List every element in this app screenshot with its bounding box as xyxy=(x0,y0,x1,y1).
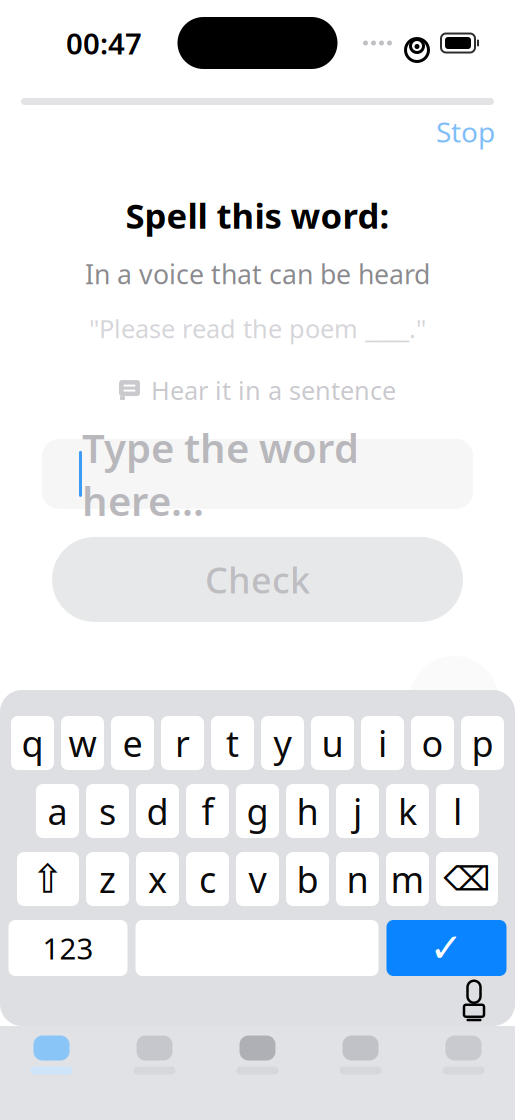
staticText: "Please read the poem ____." xyxy=(89,312,426,345)
staticText: ✓ xyxy=(429,925,463,971)
button[interactable]: 123 xyxy=(8,920,127,976)
staticText: j xyxy=(353,787,362,835)
button[interactable]: y xyxy=(261,716,304,770)
staticText: Stop xyxy=(436,113,495,150)
staticText: p xyxy=(471,719,493,767)
button[interactable]: Dictate xyxy=(461,979,515,1023)
button[interactable]: t xyxy=(211,716,254,770)
staticText: 00:47 xyxy=(66,23,142,62)
staticText: Hear it in a sentence xyxy=(151,373,396,407)
staticText: r xyxy=(175,719,190,767)
button[interactable]: Check xyxy=(0,537,515,622)
button[interactable]: c xyxy=(186,852,229,906)
button[interactable]: x xyxy=(136,852,179,906)
staticText: Check xyxy=(205,555,310,603)
staticText: 123 xyxy=(42,928,93,967)
staticText: Type the word here... xyxy=(82,421,359,527)
staticText: g xyxy=(246,787,268,835)
button[interactable]: w xyxy=(61,716,104,770)
staticText: q xyxy=(21,719,43,767)
button[interactable]: Shift xyxy=(17,852,79,906)
button[interactable]: j xyxy=(336,784,379,838)
staticText: b xyxy=(296,855,318,903)
staticText: f xyxy=(201,787,213,835)
button[interactable]: n xyxy=(336,852,379,906)
staticText: h xyxy=(296,787,318,835)
button[interactable]: q xyxy=(11,716,54,770)
staticText: e xyxy=(122,719,142,767)
staticText: v xyxy=(248,855,266,903)
staticText: z xyxy=(99,855,116,903)
staticText: y xyxy=(273,719,291,767)
button[interactable]: p xyxy=(461,716,504,770)
button[interactable]: h xyxy=(286,784,329,838)
button[interactable]: Stop xyxy=(416,105,515,158)
button[interactable]: i xyxy=(361,716,404,770)
button[interactable]: b xyxy=(286,852,329,906)
staticText: t xyxy=(226,719,239,767)
button[interactable]: return xyxy=(386,920,506,976)
staticText: a xyxy=(47,787,67,835)
button[interactable]: m xyxy=(386,852,429,906)
staticText: o xyxy=(421,719,443,767)
staticText: i xyxy=(378,719,387,767)
button[interactable]: k xyxy=(386,784,429,838)
button[interactable]: r xyxy=(161,716,204,770)
staticText: n xyxy=(346,855,368,903)
button[interactable]: v xyxy=(236,852,279,906)
staticText: x xyxy=(148,855,167,903)
staticText: s xyxy=(99,787,116,835)
button[interactable]: Type the word here... xyxy=(0,439,515,509)
button[interactable]: s xyxy=(86,784,129,838)
staticText: Spell this word: xyxy=(125,192,389,238)
button[interactable]: Delete xyxy=(436,852,498,906)
staticText: d xyxy=(146,787,168,835)
button[interactable]: e xyxy=(111,716,154,770)
button[interactable]: l xyxy=(436,784,479,838)
staticText: In a voice that can be heard xyxy=(85,256,430,292)
staticText: c xyxy=(199,855,216,903)
staticText: m xyxy=(390,855,424,903)
button[interactable]: Hear it in a sentence xyxy=(111,369,404,411)
button[interactable]: o xyxy=(411,716,454,770)
button[interactable]: u xyxy=(311,716,354,770)
button[interactable]: d xyxy=(136,784,179,838)
staticText: k xyxy=(398,787,417,835)
button[interactable]: f xyxy=(186,784,229,838)
staticText: w xyxy=(68,719,96,767)
staticText: u xyxy=(321,719,343,767)
button[interactable]: g xyxy=(236,784,279,838)
staticText: l xyxy=(453,787,462,835)
button[interactable]: a xyxy=(36,784,79,838)
staticText: ⌫ xyxy=(443,860,490,898)
button[interactable]: z xyxy=(86,852,129,906)
staticText: ⇧ xyxy=(31,856,65,902)
